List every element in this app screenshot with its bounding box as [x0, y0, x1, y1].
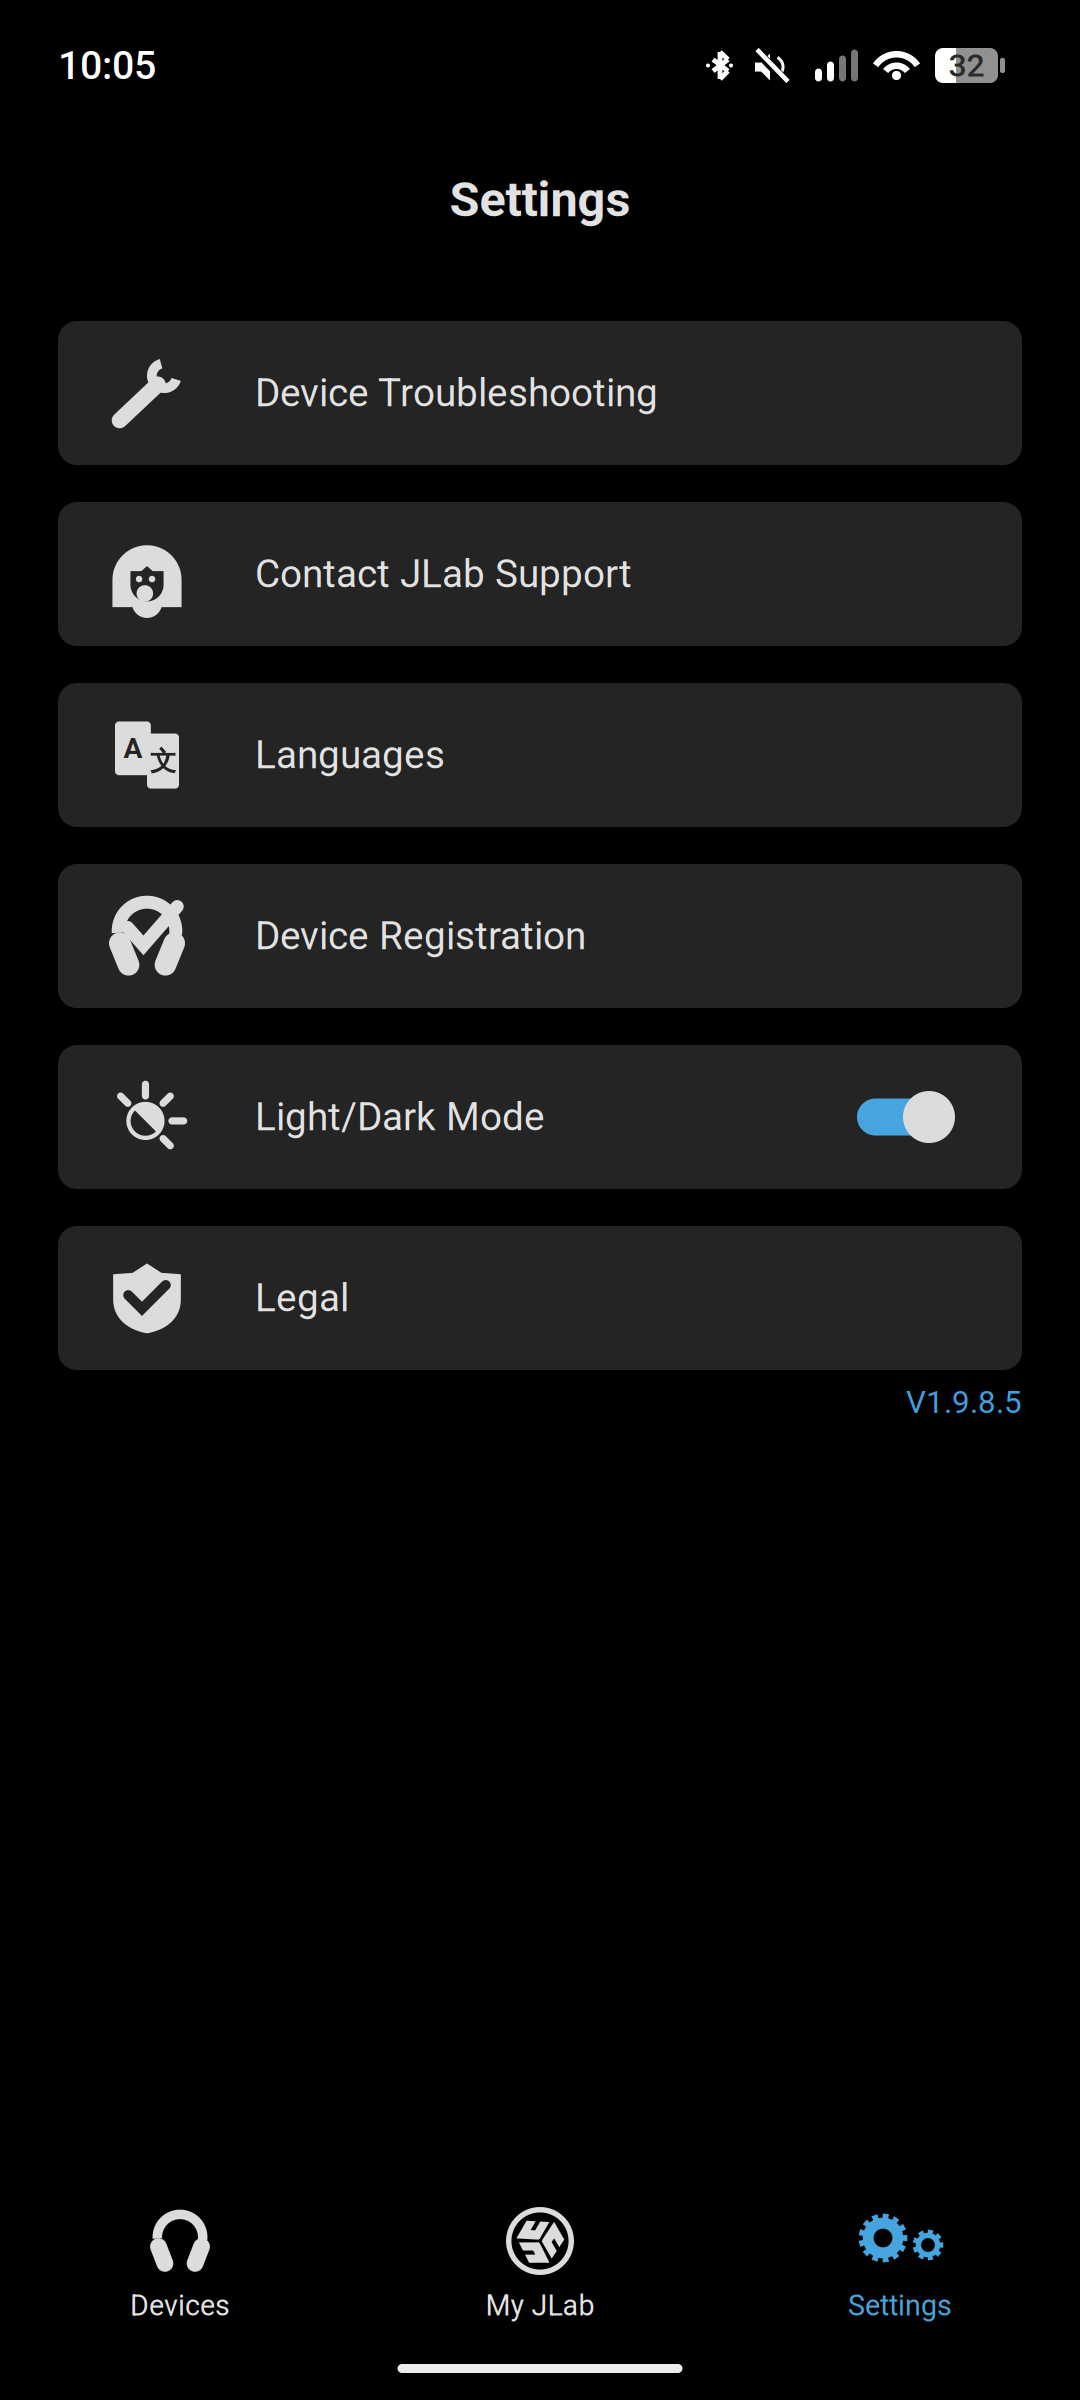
staticText: Settings: [449, 171, 630, 228]
button[interactable]: Settings: [720, 2192, 1080, 2342]
staticText: Legal: [255, 1275, 349, 1321]
staticText: 10:05: [58, 42, 156, 89]
button[interactable]: My JLab: [360, 2192, 720, 2342]
staticText: Light/Dark Mode: [255, 1094, 545, 1140]
staticText: Device Troubleshooting: [255, 370, 658, 416]
button[interactable]: Contact JLab Support: [58, 502, 1022, 646]
staticText: My JLab: [485, 2289, 594, 2323]
button[interactable]: Light/Dark Mode: [58, 1045, 1022, 1189]
button[interactable]: Devices: [0, 2192, 360, 2342]
staticText: Settings: [848, 2289, 952, 2323]
staticText: V1.9.8.5: [906, 1384, 1022, 1421]
button[interactable]: Legal: [58, 1226, 1022, 1370]
staticText: Languages: [255, 732, 445, 778]
staticText: A: [123, 732, 142, 765]
staticText: 32: [948, 47, 984, 84]
staticText: 文: [150, 744, 176, 778]
button[interactable]: Device Registration: [58, 864, 1022, 1008]
button[interactable]: A: [58, 683, 1022, 827]
staticText: Contact JLab Support: [255, 551, 632, 597]
staticText: Device Registration: [255, 913, 586, 959]
staticText: Devices: [130, 2289, 230, 2323]
button[interactable]: Device Troubleshooting: [58, 321, 1022, 465]
